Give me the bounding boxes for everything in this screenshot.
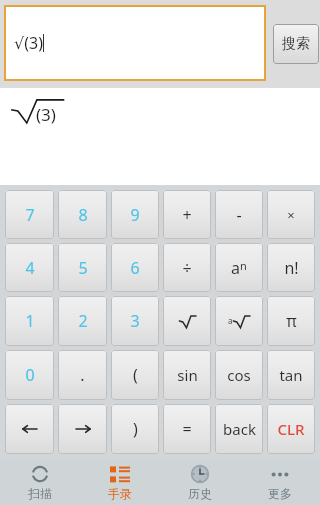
staticText: .	[80, 364, 85, 386]
staticText: a	[231, 257, 240, 279]
button[interactable]: sin	[163, 350, 211, 400]
other: Scan	[30, 464, 50, 484]
button[interactable]: 2	[58, 296, 107, 346]
other: Manual input	[110, 464, 130, 484]
staticText: CLR	[277, 419, 305, 439]
button[interactable]: 搜索	[273, 24, 319, 64]
button[interactable]	[163, 296, 211, 346]
button[interactable]: 1	[5, 296, 54, 346]
other: More	[270, 464, 290, 484]
button[interactable]: back	[215, 404, 263, 454]
staticText: 3	[130, 310, 140, 332]
staticText: 搜索	[282, 35, 310, 53]
staticText: a	[228, 315, 233, 326]
staticText: π	[286, 310, 297, 332]
button[interactable]: 9	[111, 190, 159, 239]
button[interactable]: )	[111, 404, 159, 454]
button[interactable]: 5	[58, 243, 107, 292]
staticText: cos	[227, 365, 251, 385]
staticText: tan	[279, 365, 303, 385]
button[interactable]: CLR	[267, 404, 315, 454]
button[interactable]: ÷	[163, 243, 211, 292]
staticText: ×	[287, 206, 295, 224]
button[interactable]: Scan	[0, 459, 80, 505]
button[interactable]: +	[163, 190, 211, 239]
button[interactable]: Manual input	[80, 459, 160, 505]
button[interactable]: √(3)	[4, 5, 266, 81]
staticText: 2	[78, 310, 88, 332]
button[interactable]: a	[215, 296, 263, 346]
staticText: √(3)	[14, 32, 43, 54]
button[interactable]: a	[215, 243, 263, 292]
staticText: +	[182, 204, 192, 226]
staticText: 5	[78, 257, 88, 279]
staticText: 9	[130, 204, 140, 226]
button[interactable]: cos	[215, 350, 263, 400]
button[interactable]: ×	[267, 190, 315, 239]
button[interactable]: (	[111, 350, 159, 400]
button[interactable]: -	[215, 190, 263, 239]
button[interactable]: History	[160, 459, 240, 505]
staticText: 0	[25, 364, 35, 386]
button[interactable]: .	[58, 350, 107, 400]
staticText: 历史	[188, 486, 212, 501]
staticText: n!	[284, 257, 299, 279]
other: History	[190, 464, 210, 484]
button[interactable]: More	[240, 459, 320, 505]
button[interactable]: 3	[111, 296, 159, 346]
button[interactable]: π	[267, 296, 315, 346]
staticText: 4	[25, 257, 35, 279]
staticText: 更多	[268, 486, 292, 501]
button[interactable]: 4	[5, 243, 54, 292]
button[interactable]: n!	[267, 243, 315, 292]
staticText: -	[236, 204, 242, 226]
staticText: 8	[78, 204, 88, 226]
staticText: (	[133, 364, 138, 386]
staticText: (3)	[36, 103, 56, 126]
button[interactable]: =	[163, 404, 211, 454]
staticText: )	[133, 418, 138, 440]
staticText: 6	[130, 257, 140, 279]
button[interactable]: 8	[58, 190, 107, 239]
button[interactable]: 0	[5, 350, 54, 400]
staticText: ÷	[182, 257, 192, 279]
staticText: 扫描	[28, 486, 52, 501]
staticText: 1	[25, 310, 35, 332]
button[interactable]	[5, 404, 54, 454]
staticText: n	[240, 258, 247, 273]
staticText: 手录	[108, 486, 132, 501]
staticText: 7	[25, 204, 35, 226]
button[interactable]	[58, 404, 107, 454]
button[interactable]: 7	[5, 190, 54, 239]
staticText: sin	[177, 365, 198, 385]
staticText: back	[223, 419, 256, 439]
button[interactable]: tan	[267, 350, 315, 400]
staticText: =	[182, 418, 192, 440]
button[interactable]: 6	[111, 243, 159, 292]
